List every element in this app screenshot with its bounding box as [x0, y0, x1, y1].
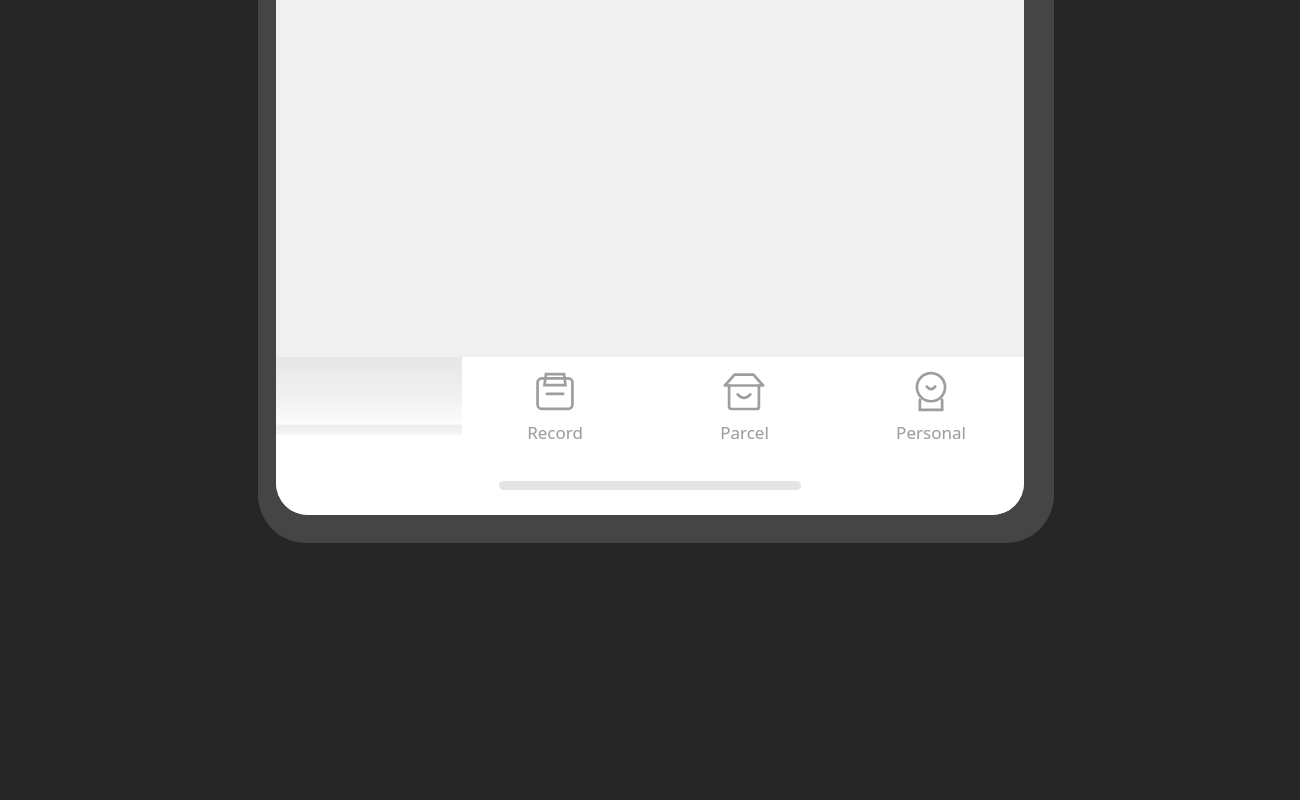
staticText: Personal — [896, 421, 966, 444]
other: Record — [534, 371, 576, 413]
button[interactable]: Record — [460, 357, 650, 515]
other: Parcel — [723, 371, 765, 413]
other: Personal — [910, 371, 952, 413]
button[interactable]: Personal — [838, 357, 1024, 515]
staticText: Record — [527, 421, 583, 444]
staticText: Parcel — [720, 421, 769, 444]
button[interactable]: Parcel — [650, 357, 838, 515]
